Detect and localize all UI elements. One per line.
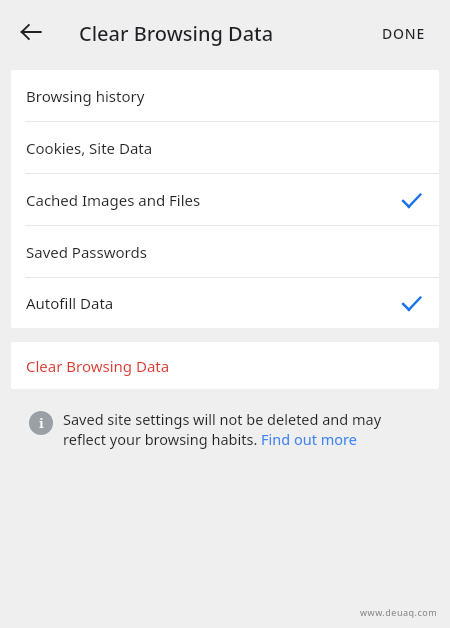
button[interactable]: Saved Passwords [11,226,439,278]
button[interactable]: Cached Images and Files [11,174,439,226]
staticText: Browsing history [26,86,145,106]
staticText: DONE [382,24,426,43]
button[interactable]: DONE [370,14,438,53]
button[interactable]: Clear Browsing Data [11,342,439,389]
button[interactable]: Saved site settings will not be deleted … [63,409,420,450]
staticText: www.deuaq.com [360,606,438,618]
staticText: Saved Passwords [26,242,147,262]
staticText: Clear Browsing Data [79,20,274,47]
button[interactable]: Browsing history [11,70,439,122]
button[interactable]: Autofill Data [11,278,439,328]
staticText: Cookies, Site Data [26,138,153,158]
staticText: Clear Browsing Data [26,356,170,376]
button[interactable]: Cookies, Site Data [11,122,439,174]
staticText: Saved site settings will not be deleted … [63,409,420,450]
staticText: i [39,414,44,432]
button[interactable]: Back [11,12,51,52]
staticText: Autofill Data [26,293,114,313]
staticText: Cached Images and Files [26,190,201,210]
